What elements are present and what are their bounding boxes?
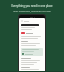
button[interactable]: Priority label — [21, 32, 25, 34]
staticText: Stay organised, wherever you are — [13, 9, 51, 12]
button[interactable]: Confirm — [21, 48, 43, 56]
button[interactable] — [21, 24, 39, 26]
staticText: Everything you need in one place — [11, 4, 53, 8]
button[interactable]: Confirm — [22, 53, 24, 55]
